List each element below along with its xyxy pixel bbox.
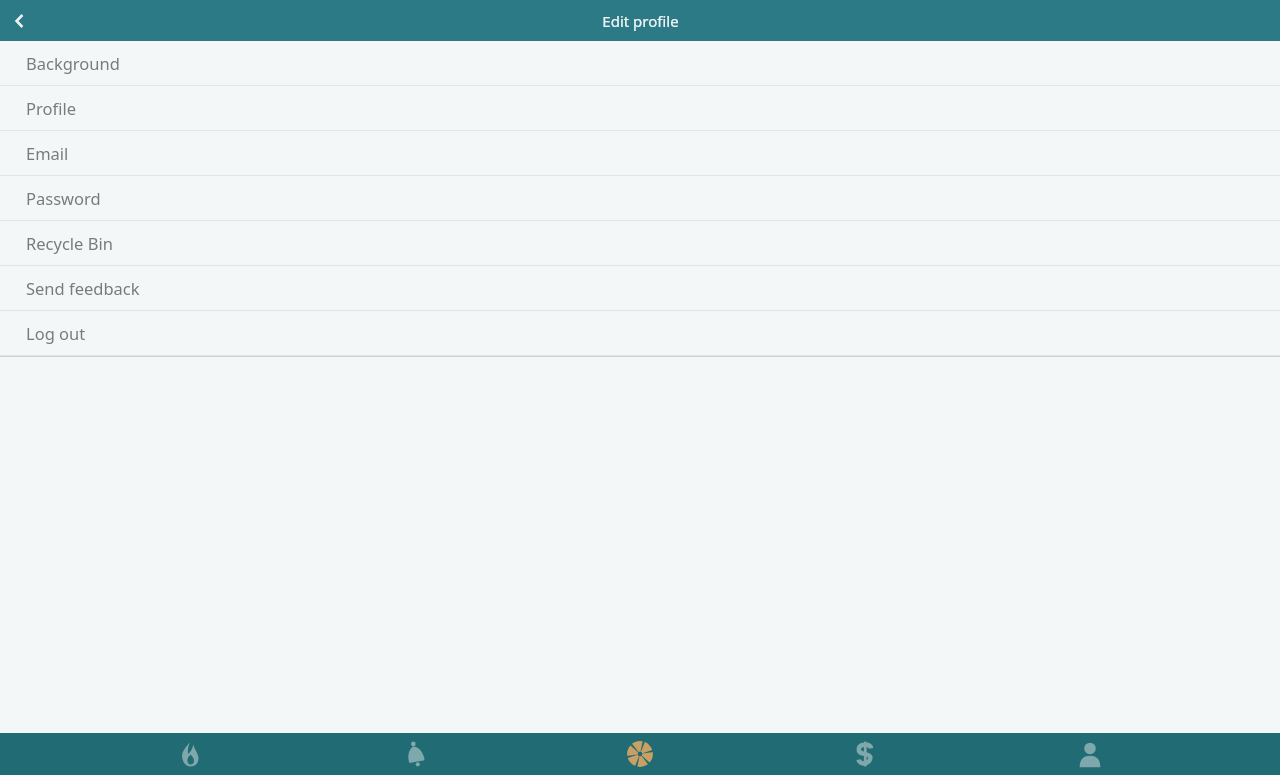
button[interactable]: Camera <box>605 733 675 775</box>
staticText: Recycle Bin <box>26 232 113 254</box>
staticText: Email <box>26 142 69 164</box>
button[interactable]: Password <box>0 176 1280 221</box>
staticText: Send feedback <box>26 277 140 299</box>
button[interactable]: Profile <box>0 86 1280 131</box>
staticText: Log out <box>26 322 86 344</box>
button[interactable]: Home <box>155 733 225 775</box>
staticText: Password <box>26 187 101 209</box>
button[interactable]: Log out <box>0 311 1280 356</box>
staticText: Background <box>26 52 120 74</box>
button[interactable]: Profile <box>1055 733 1125 775</box>
button[interactable]: Email <box>0 131 1280 176</box>
button[interactable]: Background <box>0 41 1280 86</box>
staticText: Edit profile <box>602 11 679 31</box>
button[interactable]: Recycle Bin <box>0 221 1280 266</box>
button[interactable]: Payments <box>830 733 900 775</box>
button[interactable]: Notifications <box>380 733 450 775</box>
staticText: Profile <box>26 97 76 119</box>
button[interactable]: Send feedback <box>0 266 1280 311</box>
button[interactable]: Back <box>0 1 40 41</box>
